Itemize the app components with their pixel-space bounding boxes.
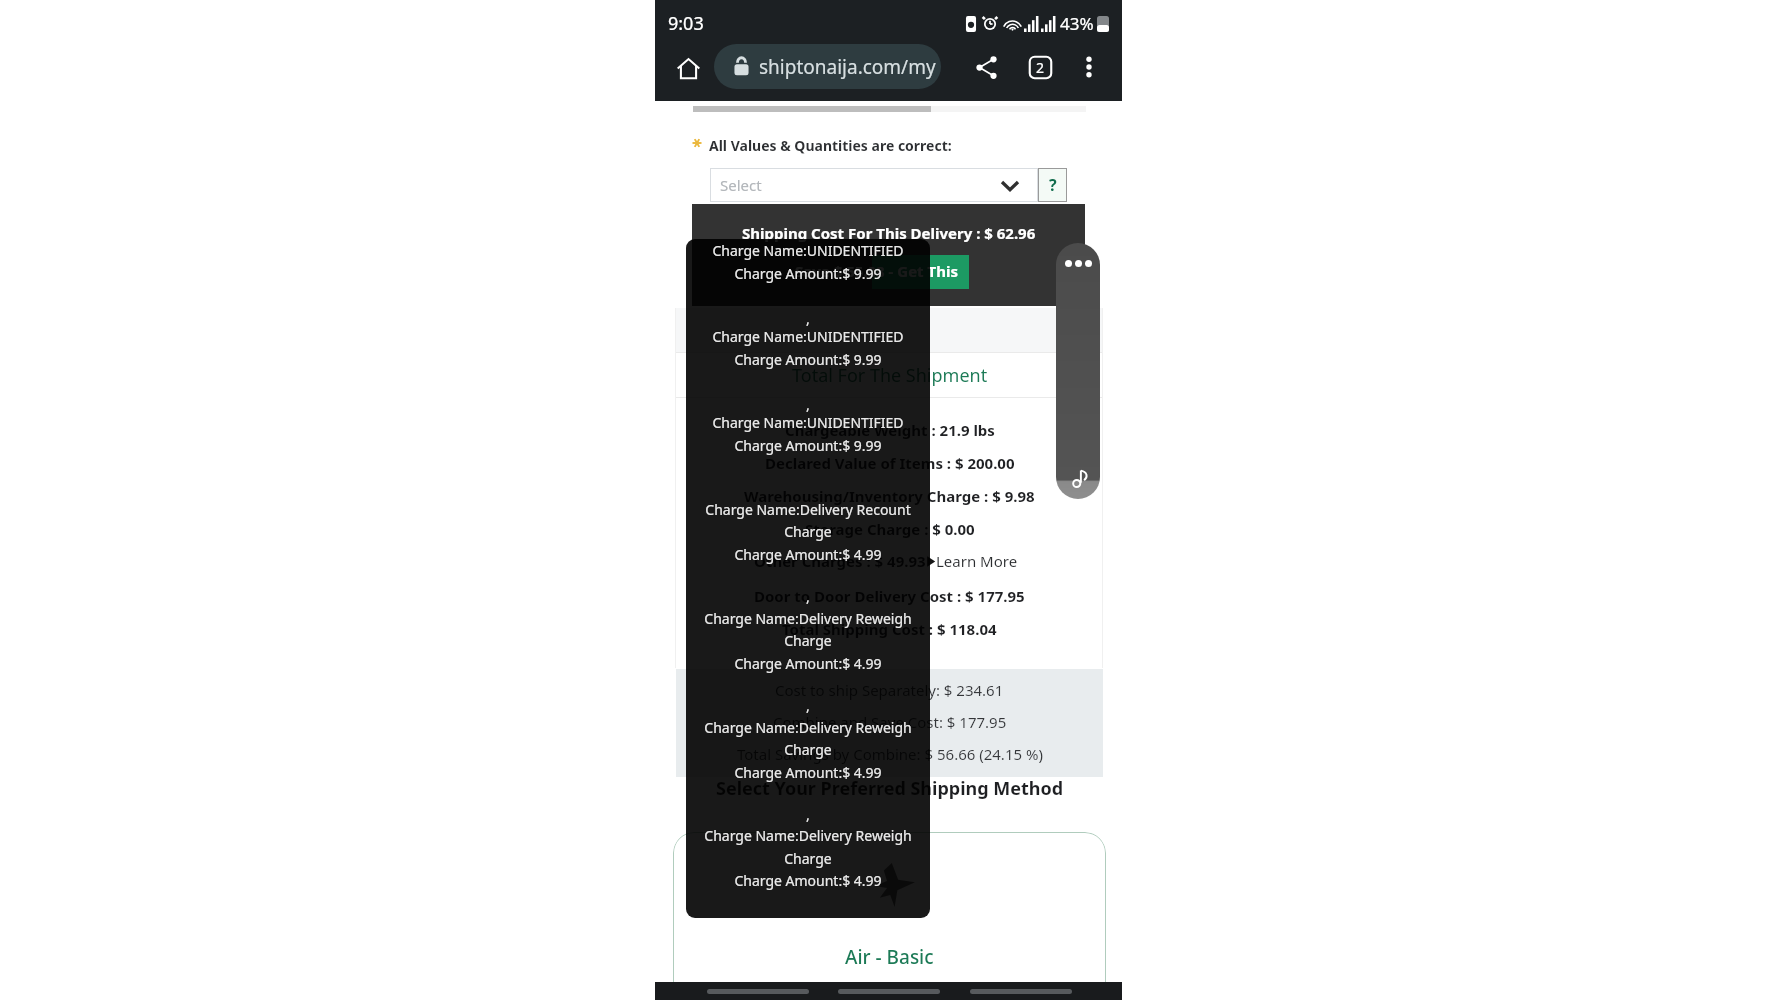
button[interactable]: More options: [1070, 48, 1108, 86]
staticText: Charge Amount:$ 4.99: [734, 871, 882, 890]
staticText: ,: [806, 805, 810, 824]
staticText: Charge: [784, 631, 832, 650]
staticText: ,: [806, 587, 810, 606]
staticText: Door to Door Delivery Cost : $ 177.95: [754, 586, 1025, 606]
staticText: 2: [1036, 58, 1045, 77]
staticText: Charge Amount:$ 9.99: [734, 350, 882, 369]
staticText: Cost to ship Separately: $ 234.61: [775, 680, 1004, 700]
staticText: Charge Name:UNIDENTIFIED: [712, 327, 904, 346]
button[interactable]: [872, 255, 969, 289]
staticText: ,: [806, 395, 810, 414]
button[interactable]: Floating widget menu: [1056, 243, 1100, 499]
button[interactable]: ?: [1038, 168, 1067, 202]
button[interactable]: Home: [667, 47, 709, 89]
staticText: Other Charges : $ 49.93: [754, 551, 926, 571]
staticText: All Values & Quantities are correct:: [709, 136, 952, 155]
staticText: Charge: [784, 849, 832, 868]
staticText: Storage Charge : $ 0.00: [805, 519, 975, 539]
staticText: 9:03: [668, 11, 704, 36]
staticText: Charge Name:Delivery Reweigh: [704, 609, 912, 628]
staticText: Shipping Cost For This Delivery : $ 62.9…: [742, 223, 1036, 243]
staticText: Air - Basic: [845, 944, 934, 970]
staticText: Warehousing/Inventory Charge : $ 9.98: [744, 486, 1035, 506]
button[interactable]: shiptonaija.com/my: [714, 44, 941, 89]
staticText: ,: [806, 696, 810, 715]
staticText: 43%: [1060, 12, 1094, 35]
button[interactable]: System navigation: [956, 982, 1086, 1000]
staticText: Total Shipping Cost : $ 118.04: [782, 619, 997, 639]
button[interactable]: Tabs: [1021, 48, 1059, 86]
button[interactable]: Select: [710, 168, 1038, 202]
button[interactable]: System navigation: [693, 982, 823, 1000]
staticText: Declared Value of Items : $ 200.00: [765, 453, 1015, 473]
staticText: Total Savings by Combine: $ 56.66 (24.15…: [737, 744, 1043, 764]
staticText: shiptonaija.com/my: [759, 54, 936, 80]
staticText: Charge Name:UNIDENTIFIED: [712, 413, 904, 432]
staticText: Charge Name:Delivery Reweigh: [704, 826, 912, 845]
staticText: Select Your Preferred Shipping Method: [716, 776, 1064, 801]
staticText: Learn More: [936, 551, 1018, 571]
staticText: Charge Amount:$ 9.99: [734, 436, 882, 455]
staticText: ?: [1049, 174, 1057, 196]
button[interactable]: System navigation: [824, 982, 954, 1000]
staticText: Charge: [784, 740, 832, 759]
staticText: Charge Name:Delivery Recount: [705, 500, 911, 519]
staticText: Charge Amount:$ 4.99: [734, 654, 882, 673]
staticText: Charge Amount:$ 9.99: [734, 264, 882, 283]
staticText: Total For The Shipment: [792, 363, 988, 388]
staticText: Charge: [784, 522, 832, 541]
staticText: Charge Name:UNIDENTIFIED: [712, 241, 904, 260]
staticText: Charge Amount:$ 4.99: [734, 763, 882, 782]
staticText: Charge Amount:$ 4.99: [734, 545, 882, 564]
staticText: Charge Name:Delivery Reweigh: [704, 718, 912, 737]
button[interactable]: Share: [967, 48, 1005, 86]
staticText: Select: [720, 175, 762, 195]
staticText: Save $ 55.08 - Get This: [795, 261, 958, 281]
button[interactable]: Air - Basic: [673, 832, 1106, 987]
staticText: ,: [806, 309, 810, 328]
staticText: Chargeable Weight : 21.9 lbs: [785, 420, 995, 440]
staticText: Combine and Save Cost: $ 177.95: [773, 712, 1007, 732]
